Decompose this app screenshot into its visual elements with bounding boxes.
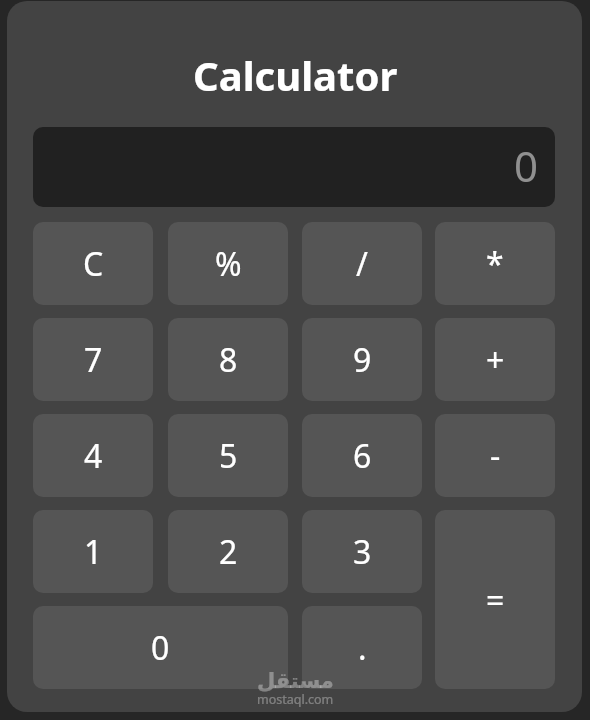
staticText: mostaql.com [257,691,334,707]
button[interactable]: 2 [168,510,288,593]
button[interactable]: 7 [33,318,153,401]
staticText: 1 [84,530,103,574]
button[interactable]: 8 [168,318,288,401]
button[interactable]: - [435,414,555,497]
button[interactable]: 0 [33,127,555,207]
button[interactable]: * [435,222,555,305]
button[interactable]: C [33,222,153,305]
staticText: 3 [353,530,372,574]
staticText: / [356,242,368,286]
button[interactable]: 0 [33,606,288,689]
button[interactable]: + [435,318,555,401]
button[interactable]: 6 [302,414,422,497]
staticText: 0 [514,137,539,194]
staticText: 5 [219,434,238,478]
staticText: Calculator [193,48,398,102]
staticText: 0 [151,626,170,670]
staticText: 8 [219,338,238,382]
staticText: * [486,242,504,286]
button[interactable]: . [302,606,422,689]
staticText: + [486,338,505,382]
button[interactable]: 3 [302,510,422,593]
button[interactable]: 9 [302,318,422,401]
staticText: - [490,434,501,478]
button[interactable]: % [168,222,288,305]
button[interactable]: = [435,510,555,689]
button[interactable]: 1 [33,510,153,593]
staticText: 7 [84,338,103,382]
staticText: 9 [353,338,372,382]
staticText: C [83,242,104,286]
staticText: . [358,626,367,670]
staticText: 4 [84,434,103,478]
staticText: مستقل [257,669,334,693]
staticText: 6 [353,434,372,478]
button[interactable]: / [302,222,422,305]
button[interactable]: 5 [168,414,288,497]
staticText: 2 [219,530,238,574]
staticText: = [486,578,505,622]
button[interactable]: 4 [33,414,153,497]
staticText: % [215,242,242,286]
